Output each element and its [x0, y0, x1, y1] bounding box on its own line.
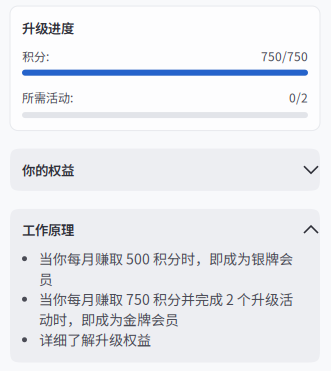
staticText: 750/750	[261, 47, 308, 65]
staticText: 你的权益	[22, 160, 74, 179]
staticText: 升级进度	[22, 18, 74, 37]
staticText: 积分:	[22, 47, 49, 65]
staticText: 当你每月赚取 500 积分时，即成为银牌会员	[39, 248, 293, 289]
staticText: 当你每月赚取 750 积分并完成 2 个升级活动时，即成为金牌会员	[39, 289, 293, 329]
button[interactable]: 工作原理	[22, 220, 318, 239]
staticText: 所需活动:	[22, 89, 73, 106]
staticText: 详细了解升级权益	[39, 329, 151, 350]
staticText: 0/2	[289, 89, 308, 106]
staticText: 工作原理	[22, 220, 74, 239]
button[interactable]: 你的权益	[10, 149, 320, 191]
